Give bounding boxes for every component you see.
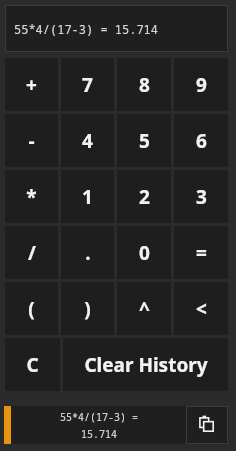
staticText: 7 [82, 72, 93, 98]
staticText: 55*4/(17-3) = [60, 410, 138, 424]
button[interactable]: / [5, 226, 58, 279]
staticText: 4 [82, 128, 93, 154]
staticText: 1 [82, 184, 93, 210]
button[interactable]: Clear History [63, 338, 228, 391]
button[interactable]: ) [61, 282, 114, 335]
staticText: 2 [139, 184, 150, 210]
button[interactable]: 0 [117, 226, 171, 279]
button[interactable]: ^ [117, 282, 171, 335]
staticText: / [28, 240, 36, 266]
button[interactable]: + [5, 58, 58, 111]
button[interactable]: 7 [61, 58, 114, 111]
button[interactable]: 8 [117, 58, 171, 111]
button[interactable]: - [5, 114, 58, 167]
staticText: ) [84, 296, 91, 322]
staticText: 6 [196, 128, 207, 154]
staticText: < [196, 296, 207, 322]
button[interactable]: 55*4/(17-3) = 15.714 [5, 5, 228, 52]
button[interactable]: 3 [174, 170, 228, 223]
button[interactable]: 1 [61, 170, 114, 223]
staticText: 8 [139, 72, 150, 98]
button[interactable]: C [5, 338, 60, 391]
staticText: 55*4/(17-3) = 15.714 [14, 21, 159, 37]
staticText: ^ [139, 296, 150, 322]
button[interactable]: 2 [117, 170, 171, 223]
button[interactable]: ( [5, 282, 58, 335]
button[interactable]: 9 [174, 58, 228, 111]
button[interactable]: Copy result [186, 406, 228, 444]
button[interactable]: < [174, 282, 228, 335]
staticText: + [26, 72, 37, 98]
button[interactable]: 4 [61, 114, 114, 167]
button[interactable]: 5 [117, 114, 171, 167]
staticText: 3 [196, 184, 207, 210]
staticText: - [28, 128, 35, 154]
button[interactable]: . [61, 226, 114, 279]
staticText: . [85, 240, 91, 266]
staticText: ( [28, 296, 35, 322]
staticText: Clear History [84, 352, 208, 378]
button[interactable]: 6 [174, 114, 228, 167]
button[interactable]: * [5, 170, 58, 223]
staticText: = [196, 240, 207, 266]
button[interactable]: = [174, 226, 228, 279]
button[interactable]: 55*4/(17-3) = [4, 406, 186, 444]
staticText: 15.714 [81, 427, 117, 441]
staticText: 0 [139, 240, 150, 266]
staticText: * [26, 184, 37, 210]
staticText: 5 [139, 128, 150, 154]
staticText: 9 [196, 72, 207, 98]
staticText: C [26, 352, 39, 378]
